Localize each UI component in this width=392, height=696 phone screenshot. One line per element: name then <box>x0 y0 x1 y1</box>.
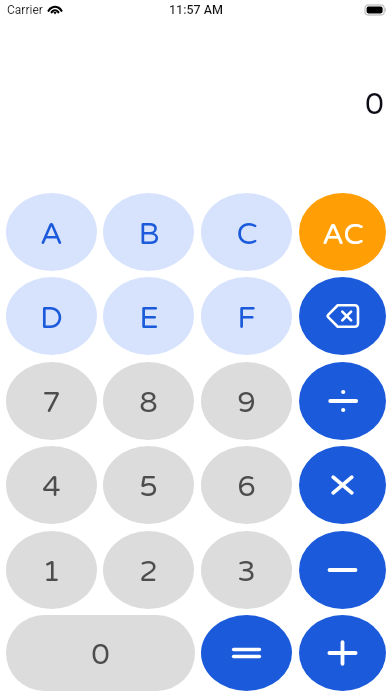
button[interactable]: 2 <box>103 531 194 609</box>
button[interactable]: Equals <box>201 615 292 691</box>
button[interactable]: D <box>6 277 97 355</box>
button[interactable]: 8 <box>103 362 194 440</box>
button[interactable]: 7 <box>6 362 97 440</box>
staticText: 0 <box>91 637 110 673</box>
button[interactable]: 1 <box>6 531 97 609</box>
staticText: Carrier <box>7 3 43 17</box>
staticText: C <box>236 216 258 253</box>
staticText: B <box>138 216 160 253</box>
staticText: 5 <box>139 469 158 505</box>
staticText: D <box>40 300 63 337</box>
button[interactable]: A <box>6 193 97 271</box>
staticText: 1 <box>42 554 61 590</box>
staticText: 3 <box>237 554 256 590</box>
button[interactable]: C <box>201 193 292 271</box>
staticText: 11:57 AM <box>169 2 224 17</box>
button[interactable]: Backspace <box>299 277 386 355</box>
button[interactable]: 5 <box>103 446 194 524</box>
button[interactable]: 6 <box>201 446 292 524</box>
staticText: 4 <box>42 469 61 505</box>
button[interactable]: 9 <box>201 362 292 440</box>
staticText: AC <box>322 217 364 252</box>
staticText: 9 <box>237 385 256 421</box>
button[interactable]: Divide <box>299 362 386 440</box>
button[interactable]: Minus <box>299 531 386 609</box>
button[interactable]: Plus <box>299 615 386 691</box>
button[interactable]: 0 <box>6 615 195 691</box>
staticText: 8 <box>139 385 158 421</box>
button[interactable]: 4 <box>6 446 97 524</box>
button[interactable]: E <box>103 277 194 355</box>
button[interactable]: B <box>103 193 194 271</box>
staticText: 6 <box>237 469 256 505</box>
staticText: 0 <box>365 86 384 122</box>
button[interactable]: AC <box>299 193 386 271</box>
button[interactable]: Multiply <box>299 446 386 524</box>
staticText: F <box>237 300 256 337</box>
staticText: 7 <box>42 385 61 421</box>
staticText: 2 <box>139 554 158 590</box>
button[interactable]: 3 <box>201 531 292 609</box>
staticText: E <box>139 300 159 337</box>
staticText: A <box>40 216 63 253</box>
button[interactable]: F <box>201 277 292 355</box>
